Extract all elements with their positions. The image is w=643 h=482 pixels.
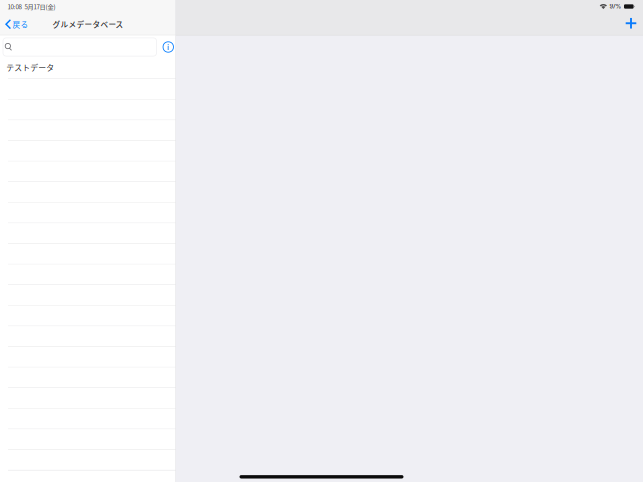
button[interactable]: Information bbox=[161, 35, 175, 58]
button[interactable] bbox=[0, 264, 176, 285]
staticText: 10:08 5月17日(金) bbox=[7, 2, 55, 11]
staticText: グルメデータベース bbox=[52, 19, 123, 30]
button[interactable] bbox=[0, 367, 176, 388]
staticText: 戻る bbox=[13, 19, 29, 30]
button[interactable]: Add bbox=[622, 13, 640, 35]
button[interactable] bbox=[0, 161, 176, 182]
button[interactable]: テストデータ bbox=[0, 58, 176, 79]
staticText: 97% bbox=[609, 3, 621, 10]
staticText: テストデータ bbox=[6, 62, 54, 73]
button[interactable]: 戻る bbox=[0, 13, 35, 35]
